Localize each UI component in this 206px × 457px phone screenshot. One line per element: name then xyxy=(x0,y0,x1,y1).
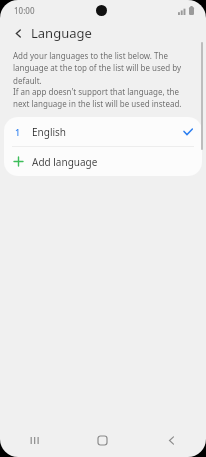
button[interactable]: Back xyxy=(8,23,28,43)
staticText: 1 xyxy=(15,126,21,138)
staticText: 10:00 xyxy=(14,5,35,16)
button[interactable]: Recents xyxy=(0,423,68,457)
button[interactable]: Home xyxy=(68,423,137,457)
staticText: Language xyxy=(31,24,92,42)
button[interactable]: 1 xyxy=(4,117,202,146)
staticText: If an app doesn't support that language,… xyxy=(13,86,196,109)
staticText: Add language xyxy=(32,155,98,169)
staticText: Add your languages to the list below. Th… xyxy=(13,50,196,86)
button[interactable]: Back xyxy=(137,423,206,457)
button[interactable]: Add language xyxy=(4,147,202,176)
staticText: English xyxy=(32,125,67,139)
